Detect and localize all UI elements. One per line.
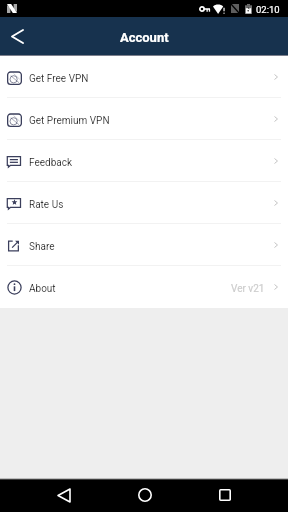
staticText: Feedback [29,157,73,169]
button[interactable]: Feedback [0,140,288,182]
staticText: Account [120,30,169,45]
button[interactable]: Share [0,224,288,266]
button[interactable]: About [0,266,288,308]
button[interactable]: Get Premium VPN [0,98,288,140]
staticText: About [29,283,56,295]
button[interactable]: Home [128,478,162,512]
staticText: Get Premium VPN [29,115,110,127]
button[interactable]: Back [47,478,81,512]
staticText: Rate Us [29,199,64,211]
button[interactable]: Back [0,17,34,55]
button[interactable]: Rate Us [0,182,288,224]
button[interactable]: Recents [208,478,242,512]
staticText: Ver v21 [231,283,265,295]
staticText: Share [29,241,55,253]
staticText: Get Free VPN [29,73,89,85]
staticText: 02:10 [256,4,280,15]
button[interactable]: Get Free VPN [0,56,288,98]
